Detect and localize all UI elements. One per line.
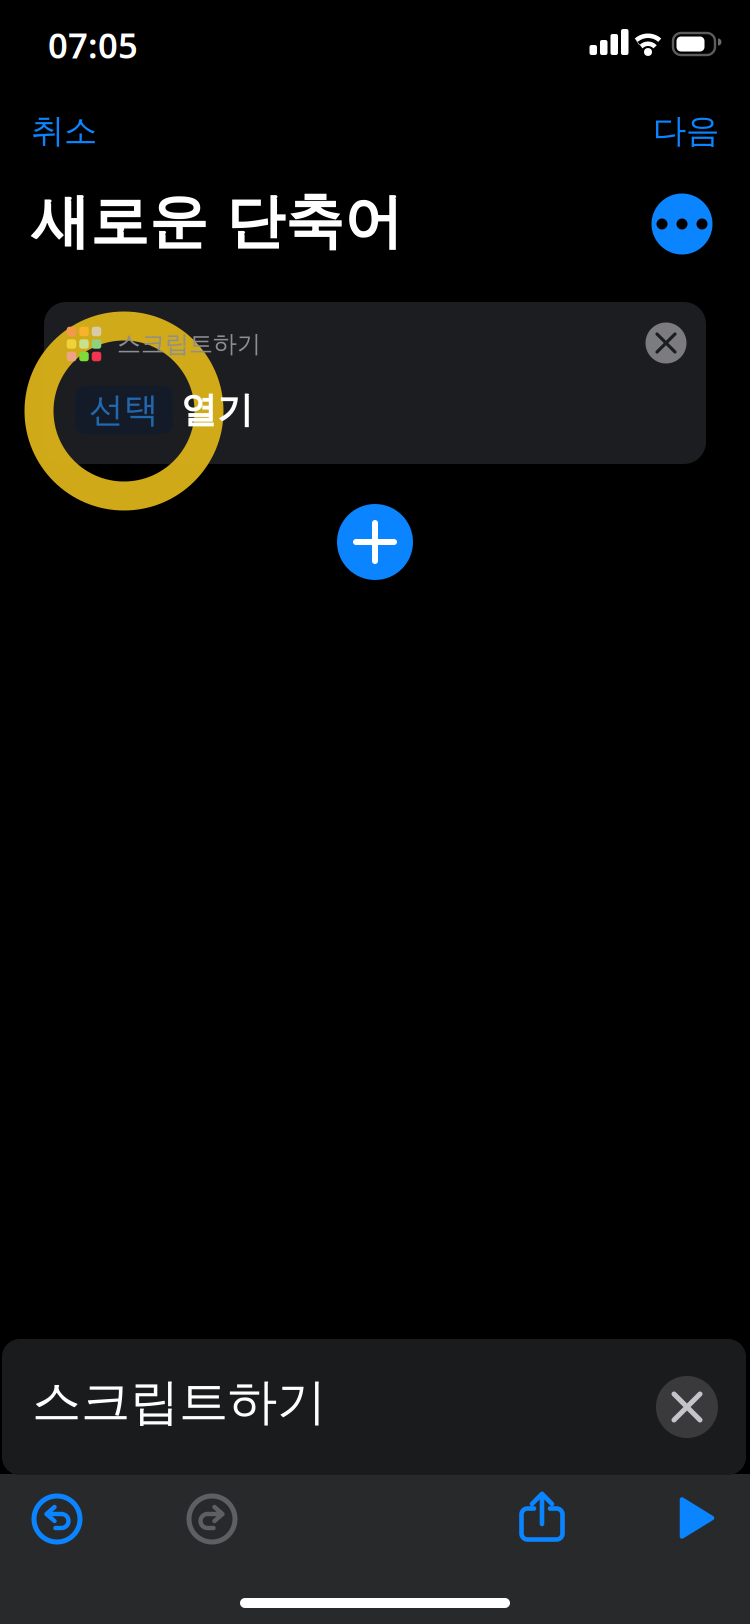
staticText: 스크립트하기 <box>32 1372 326 1432</box>
staticText: 스크립트하기 <box>117 329 261 359</box>
staticText: 취소 <box>31 110 97 151</box>
button[interactable]: Redo <box>168 1475 256 1563</box>
staticText: 열기 <box>181 388 253 432</box>
staticText: 다음 <box>653 110 719 151</box>
button[interactable]: Remove action <box>628 305 704 381</box>
button[interactable]: Close <box>643 1363 731 1451</box>
button[interactable]: 다음 <box>645 100 727 161</box>
button[interactable]: More options <box>638 180 726 268</box>
staticText: 07:05 <box>48 22 138 68</box>
staticText: 새로운 단축어 <box>31 186 403 258</box>
button[interactable]: 취소 <box>23 100 105 161</box>
button[interactable]: Add action <box>329 496 421 588</box>
button[interactable]: Share <box>498 1472 586 1560</box>
button[interactable]: Run <box>653 1474 741 1562</box>
button[interactable]: Undo <box>13 1475 101 1563</box>
staticText: 선택 <box>89 389 159 431</box>
